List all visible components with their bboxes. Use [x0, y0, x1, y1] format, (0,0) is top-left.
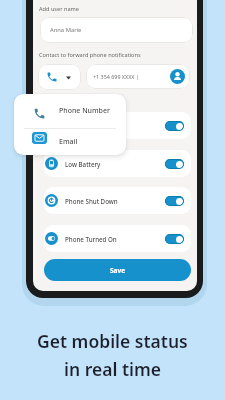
staticText: Add user name — [39, 5, 79, 13]
staticText: Low Battery — [65, 160, 101, 168]
button[interactable] — [165, 196, 184, 206]
button[interactable]: Anna Marie — [40, 17, 193, 43]
button[interactable] — [38, 64, 81, 90]
staticText: +1 354 699 XXXX | — [93, 73, 139, 80]
staticText: Get mobile status — [37, 329, 188, 353]
staticText: Phone Number — [59, 106, 110, 116]
button[interactable]: Low Battery — [44, 150, 191, 177]
button[interactable] — [165, 159, 184, 169]
button[interactable]: Phone Turned On — [44, 225, 191, 252]
button[interactable]: Phone Number — [14, 94, 126, 128]
button[interactable] — [165, 121, 184, 131]
staticText: Contact to forward phone notifications — [39, 51, 141, 59]
button[interactable] — [170, 69, 185, 84]
staticText: Phone Shut Down — [65, 197, 118, 205]
staticText: Save — [110, 266, 126, 275]
staticText: Phone Turned On — [65, 235, 117, 243]
button[interactable] — [44, 112, 191, 139]
button[interactable]: Phone Shut Down — [44, 187, 191, 214]
button[interactable]: Email — [14, 129, 126, 155]
staticText: in real time — [64, 357, 161, 381]
button[interactable] — [165, 234, 184, 244]
button[interactable]: Save — [44, 259, 191, 281]
button[interactable]: +1 354 699 XXXX | — [86, 64, 190, 89]
staticText: Email — [59, 137, 78, 147]
staticText: Anna Marie — [50, 26, 82, 34]
